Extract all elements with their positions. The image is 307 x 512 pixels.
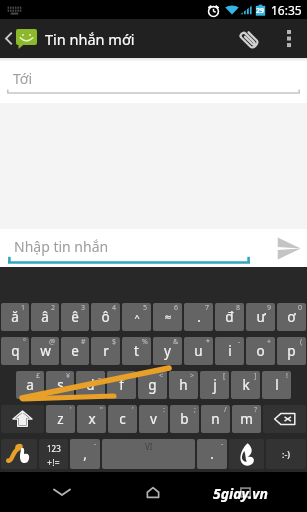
staticText: 8 (236, 303, 241, 313)
staticText: â (41, 308, 49, 326)
staticText: < (159, 371, 164, 381)
staticText: = (128, 371, 133, 381)
staticText: h (179, 376, 188, 394)
staticText: £ (36, 371, 41, 381)
button[interactable]: j (200, 371, 229, 399)
staticText: 4 (112, 303, 117, 313)
button[interactable]: h (169, 371, 198, 399)
button[interactable]: s (46, 371, 74, 399)
staticText: & (173, 337, 179, 347)
button[interactable]: x (77, 405, 106, 433)
button[interactable]: f (107, 371, 136, 399)
staticText: ≈ (164, 312, 172, 322)
staticText: a (26, 376, 34, 394)
staticText: ! (286, 371, 288, 381)
button[interactable]: t (122, 337, 151, 365)
staticText: q (11, 342, 20, 360)
button[interactable]: n (201, 405, 230, 433)
staticText: > (190, 371, 195, 381)
button[interactable]: Backspace (263, 405, 306, 433)
staticText: 0 (298, 303, 303, 313)
staticText: l (275, 376, 279, 394)
button[interactable]: r (91, 337, 120, 365)
button[interactable]: i (215, 337, 244, 365)
staticText: c (119, 410, 126, 428)
button[interactable]: e (61, 337, 89, 365)
button[interactable]: ^ (122, 303, 151, 331)
button[interactable]: a (16, 371, 44, 399)
button[interactable]: Send (271, 229, 307, 267)
button[interactable]: Back (44, 472, 80, 512)
staticText: v (150, 410, 157, 428)
staticText: ' (70, 405, 72, 415)
button[interactable]: . (197, 439, 227, 469)
staticText: đ (225, 308, 234, 326)
button[interactable]: Vietnamese input (229, 439, 264, 469)
staticText: t (134, 342, 139, 360)
staticText: ° (23, 337, 26, 347)
staticText: , (83, 445, 87, 463)
staticText: Nhập tin nhắn (14, 237, 109, 256)
button[interactable]: g (138, 371, 167, 399)
staticText: . (210, 445, 214, 463)
staticText: u (194, 342, 203, 360)
staticText: 9 (267, 303, 272, 313)
staticText: - (221, 439, 224, 449)
staticText: p (287, 342, 296, 360)
staticText: f (119, 376, 124, 394)
button[interactable]: Back (2, 19, 135, 58)
button[interactable]: đ (215, 303, 244, 331)
staticText: ' (132, 405, 134, 415)
staticText: ¥ (66, 371, 71, 381)
button[interactable]: ≈ (153, 303, 182, 331)
button[interactable]: More options (270, 19, 307, 58)
button[interactable]: o (246, 337, 275, 365)
button[interactable]: z (46, 405, 75, 433)
staticText: m (240, 410, 253, 428)
button[interactable]: w (31, 337, 59, 365)
staticText: @ (49, 337, 56, 347)
staticText: k (242, 376, 250, 394)
staticText: +!= (47, 456, 60, 468)
staticText: ơ (287, 308, 296, 326)
button[interactable]: 123 (39, 439, 68, 469)
staticText: b (180, 410, 189, 428)
staticText: i (228, 342, 232, 360)
button[interactable]: ơ (277, 303, 306, 331)
button[interactable]: :-) (266, 439, 306, 469)
button[interactable]: , (70, 439, 100, 469)
staticText: ( (300, 337, 303, 347)
button[interactable]: Home (136, 472, 170, 512)
staticText: Tới (13, 69, 33, 88)
button[interactable]: . (184, 303, 213, 331)
button[interactable]: ư (246, 303, 275, 331)
button[interactable]: ô (91, 303, 120, 331)
staticText: x (88, 410, 96, 428)
button[interactable]: v (139, 405, 168, 433)
button[interactable]: p (277, 337, 306, 365)
button[interactable]: d (76, 371, 105, 399)
button[interactable]: Shift (1, 405, 44, 433)
staticText: VI (145, 441, 153, 452)
staticText: ư (256, 308, 266, 326)
staticText: 6 (174, 303, 179, 313)
button[interactable]: y (153, 337, 182, 365)
staticText: " (100, 405, 103, 415)
staticText: y (164, 342, 171, 360)
button[interactable]: k (231, 371, 260, 399)
button[interactable]: ê (61, 303, 89, 331)
button[interactable]: Gesture typing (1, 439, 37, 469)
button[interactable]: q (1, 337, 29, 365)
button[interactable]: ă (1, 303, 29, 331)
staticText: s (57, 376, 64, 394)
staticText: ] (254, 371, 257, 381)
button[interactable]: u (184, 337, 213, 365)
button[interactable]: â (31, 303, 59, 331)
button[interactable]: c (108, 405, 137, 433)
button[interactable]: m (232, 405, 261, 433)
button[interactable]: Attach file (228, 19, 270, 58)
button[interactable]: b (170, 405, 199, 433)
button[interactable]: l (262, 371, 291, 399)
button[interactable]: Recent apps (228, 472, 262, 512)
